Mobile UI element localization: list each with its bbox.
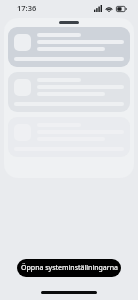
button[interactable]: [8, 27, 130, 67]
staticText: Öppna systeminställningarna: [21, 263, 118, 273]
other: Home indicator: [41, 291, 97, 294]
staticText: 17:36: [17, 3, 37, 13]
button[interactable]: [8, 72, 130, 112]
button[interactable]: Öppna systeminställningarna: [17, 259, 121, 277]
